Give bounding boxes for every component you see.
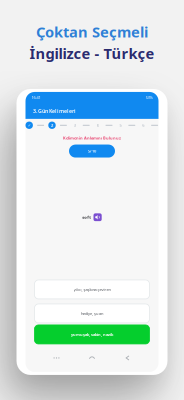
staticText: 2 [51,123,53,128]
button[interactable]: Home [87,353,96,362]
button[interactable]: yılıcı, şaşkına çeviren [34,280,149,299]
staticText: 53% [145,95,152,100]
button[interactable]: yumuşak, sakin, nazik [34,325,149,344]
button[interactable]: Back [123,353,132,362]
button[interactable]: Play pronunciation [93,213,102,221]
staticText: 3 [74,123,76,128]
staticText: Kelimenin Anlamını Bulunuz [63,135,121,141]
staticText: yumuşak, sakin, nazik [71,332,113,337]
staticText: hediye, şu an [81,311,103,316]
button[interactable]: Recent apps [52,353,61,362]
staticText: 4 [97,123,99,128]
staticText: 16:41 [31,95,40,100]
staticText: yılıcı, şaşkına çeviren [73,287,110,292]
staticText: Çoktan Seçmeli [36,22,148,41]
staticText: soft [82,215,91,220]
staticText: 5/10 [88,148,96,154]
staticText: İngilizce - Türkçe [29,43,154,63]
staticText: ✓ [28,123,31,127]
staticText: 3. Gün Kelimeleri [33,107,76,114]
staticText: 6 [142,123,144,128]
staticText: 5 [119,123,121,128]
button[interactable]: hediye, şu an [34,304,149,323]
